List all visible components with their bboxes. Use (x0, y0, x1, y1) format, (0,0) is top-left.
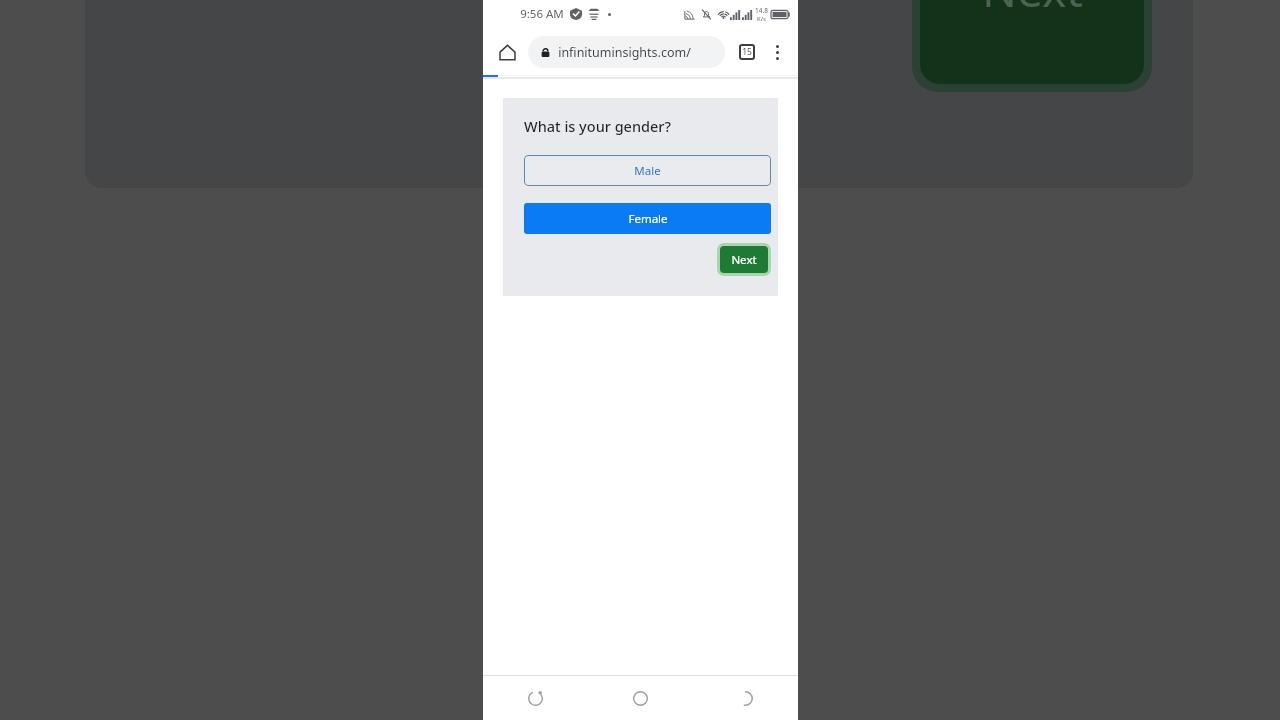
button[interactable]: Next (717, 243, 771, 276)
staticText: 9:56 AM (520, 6, 564, 22)
button[interactable]: Female (524, 203, 771, 234)
button[interactable]: Recent apps (483, 676, 588, 720)
staticText: What is your gender? (524, 116, 671, 136)
button[interactable]: infinituminsights.com/ (528, 36, 725, 68)
button[interactable]: More options (762, 37, 792, 67)
button[interactable]: Home (491, 36, 523, 68)
staticText: infinituminsights.com/ (558, 44, 691, 61)
button[interactable]: Tabs, 15 open (732, 37, 762, 67)
staticText: Female (628, 211, 668, 227)
button[interactable]: Back (693, 676, 798, 720)
staticText: 14.8 (755, 6, 768, 15)
staticText: Next (731, 252, 757, 268)
button[interactable]: Home (588, 676, 693, 720)
button[interactable]: Male (524, 155, 771, 186)
staticText: Next (982, 0, 1083, 21)
staticText: K/s (757, 15, 766, 23)
staticText: Male (634, 163, 661, 179)
staticText: 15 (742, 46, 752, 58)
